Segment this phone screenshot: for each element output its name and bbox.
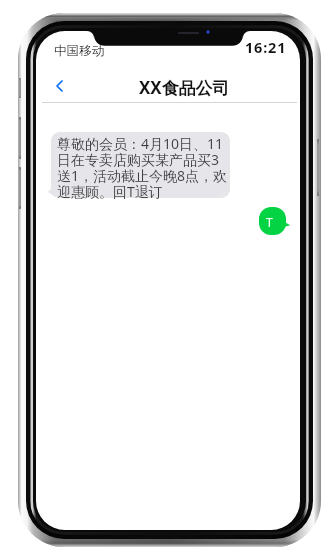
button[interactable]: Back (45, 72, 73, 100)
staticText: T (266, 214, 273, 231)
staticText: 16:21 (245, 37, 287, 57)
staticText: XX食品公司 (139, 76, 230, 99)
staticText: 中国移动 (54, 43, 105, 59)
button[interactable]: T (259, 207, 286, 235)
staticText: 尊敬的会员：4月10日、11 日在专卖店购买某产品买3 送1，活动截止今晚8点，… (57, 134, 228, 200)
